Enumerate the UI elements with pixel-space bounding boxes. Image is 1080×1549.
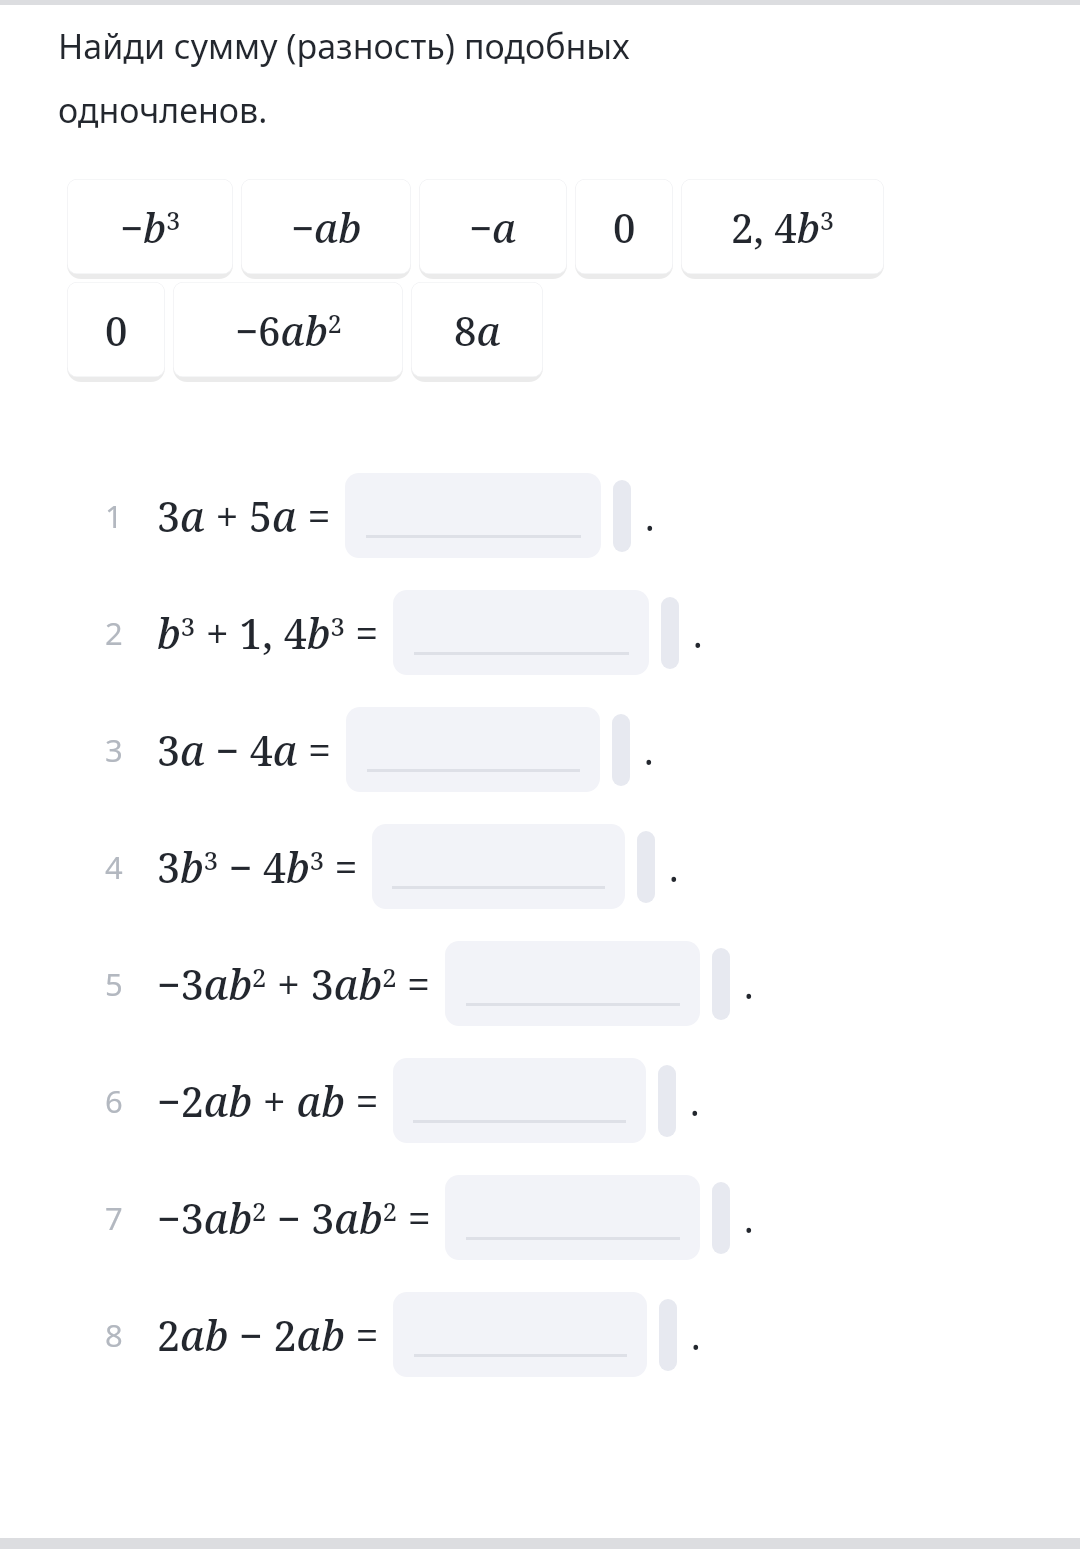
staticText: 6 — [105, 1080, 123, 1122]
staticText: −3ab2 + 3ab2 = — [157, 956, 431, 1012]
staticText: . — [644, 724, 654, 776]
staticText: . — [744, 958, 754, 1010]
staticText: 3 — [105, 729, 123, 771]
staticText: 0 — [613, 200, 636, 254]
button[interactable]: 4 — [0, 808, 1080, 925]
button[interactable]: Answer field 5 — [445, 941, 700, 1026]
button[interactable]: 2 — [0, 574, 1080, 691]
staticText: 3a + 5a = — [157, 488, 331, 544]
staticText: 2, 4b3 — [731, 200, 834, 254]
button[interactable]: Answer field 7 — [445, 1175, 700, 1260]
staticText: 8 — [105, 1314, 123, 1356]
button[interactable]: 1 — [0, 457, 1080, 574]
button[interactable]: 8 — [0, 1276, 1080, 1393]
button[interactable]: 8a — [411, 282, 543, 377]
staticText: 7 — [105, 1197, 123, 1239]
button[interactable]: 0 — [67, 282, 165, 377]
button[interactable]: 5 — [0, 925, 1080, 1042]
staticText: −2ab + ab = — [157, 1073, 379, 1129]
staticText: . — [744, 1192, 754, 1244]
staticText: −3ab2 − 3ab2 = — [157, 1190, 431, 1246]
button[interactable]: Answer field 2 — [393, 590, 649, 675]
staticText: 2ab − 2ab = — [157, 1307, 379, 1363]
button[interactable]: −b3 — [67, 179, 233, 274]
staticText: . — [693, 607, 703, 659]
staticText: −6ab2 — [235, 303, 342, 357]
button[interactable]: −ab — [241, 179, 411, 274]
button[interactable]: 6 — [0, 1042, 1080, 1159]
staticText: 0 — [105, 303, 128, 357]
button[interactable]: Answer field 6 — [393, 1058, 646, 1143]
staticText: . — [645, 490, 655, 542]
staticText: 1 — [105, 495, 123, 537]
staticText: 2 — [105, 612, 123, 654]
staticText: −b3 — [120, 200, 181, 254]
staticText: 5 — [105, 963, 123, 1005]
staticText: Найди сумму (разность) подобных одночлен… — [58, 23, 630, 133]
button[interactable]: Answer field 3 — [346, 707, 600, 792]
staticText: . — [669, 841, 679, 893]
button[interactable]: −a — [419, 179, 567, 274]
button[interactable]: 0 — [575, 179, 673, 274]
button[interactable]: 7 — [0, 1159, 1080, 1276]
button[interactable]: 3 — [0, 691, 1080, 808]
staticText: b3 + 1, 4b3 = — [157, 605, 379, 661]
staticText: . — [691, 1309, 701, 1361]
button[interactable]: 2, 4b3 — [681, 179, 884, 274]
staticText: 3a − 4a = — [157, 722, 332, 778]
staticText: −ab — [291, 200, 362, 254]
button[interactable]: Answer field 8 — [393, 1292, 647, 1377]
button[interactable]: −6ab2 — [173, 282, 403, 377]
button[interactable]: Answer field 1 — [345, 473, 601, 558]
staticText: 3b3 − 4b3 = — [157, 839, 358, 895]
staticText: −a — [469, 200, 517, 254]
staticText: 4 — [105, 846, 123, 888]
staticText: . — [690, 1075, 700, 1127]
button[interactable]: Answer field 4 — [372, 824, 625, 909]
staticText: 8a — [454, 303, 501, 357]
